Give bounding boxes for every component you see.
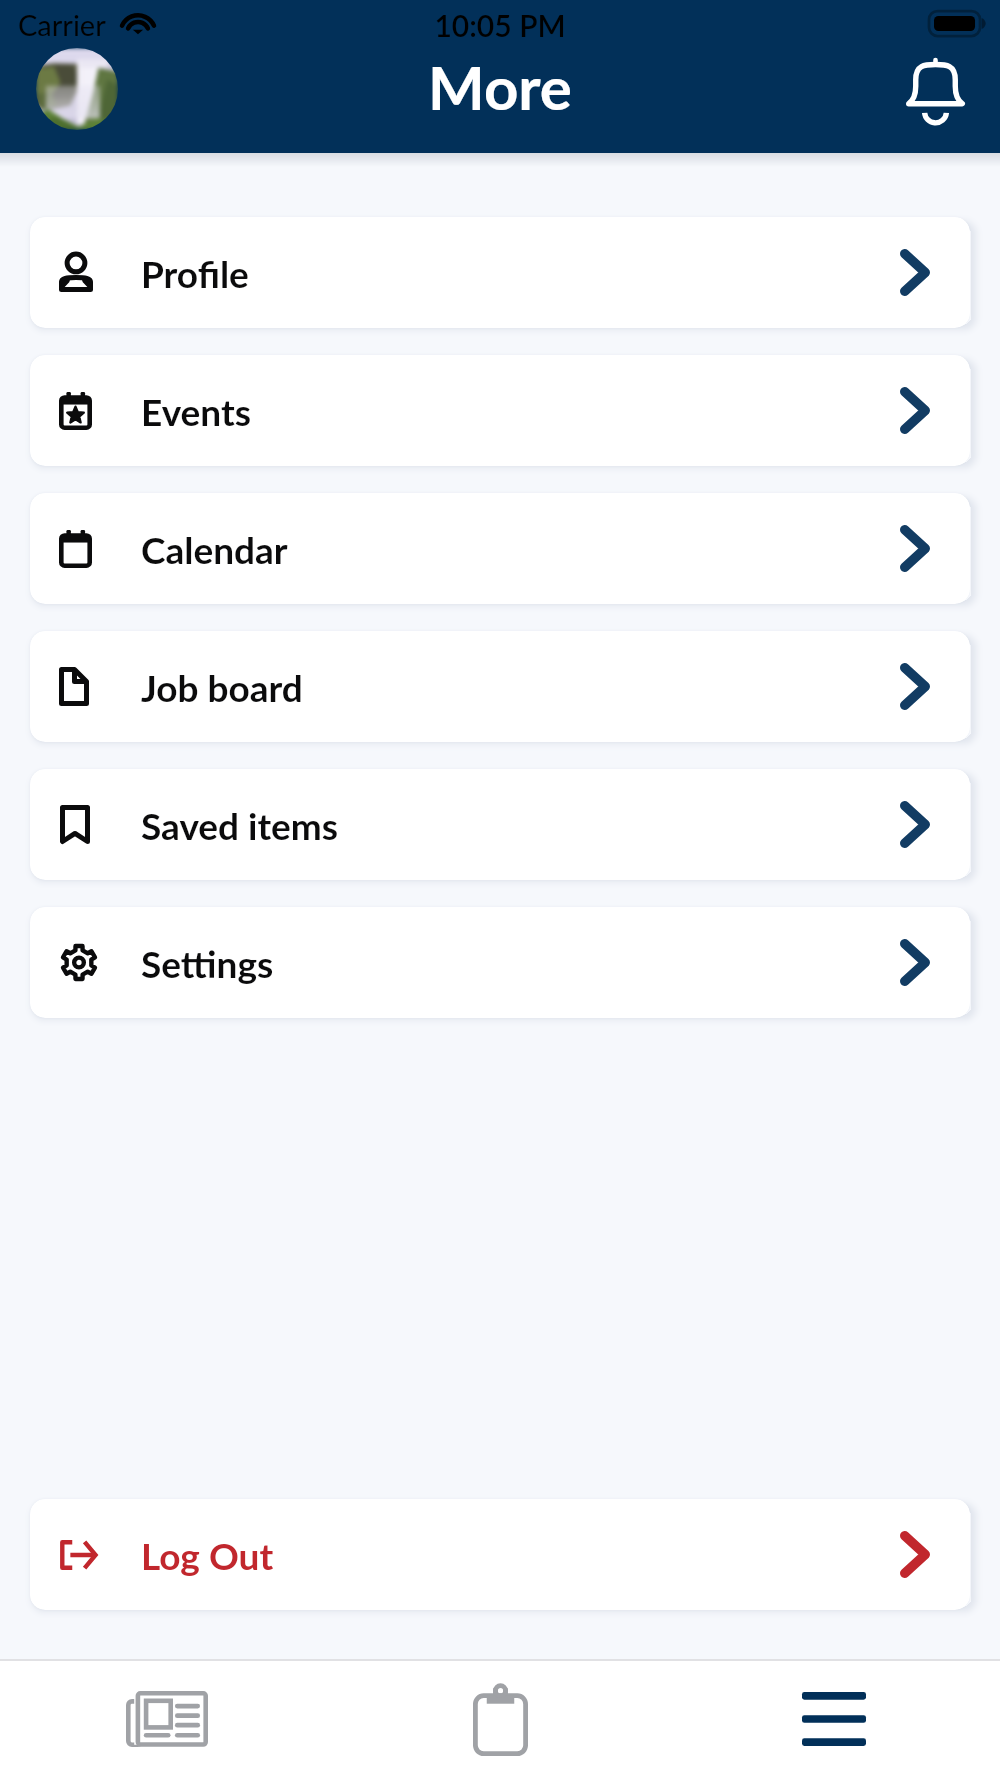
staticText: Saved items (141, 803, 339, 847)
button[interactable]: Jobs (334, 1659, 667, 1778)
staticText: More (0, 51, 1000, 123)
staticText: Job board (141, 665, 303, 709)
button[interactable]: Events (30, 355, 970, 466)
button[interactable]: News (0, 1659, 334, 1778)
staticText: Carrier (18, 7, 106, 42)
staticText: Profile (141, 251, 249, 295)
staticText: 10:05 PM (0, 7, 1000, 43)
button[interactable]: Log Out (30, 1499, 970, 1610)
button[interactable]: Profile (30, 217, 970, 328)
button[interactable]: Job board (30, 631, 970, 742)
staticText: Log Out (141, 1533, 274, 1577)
button[interactable]: Notifications (892, 46, 978, 132)
staticText: Settings (141, 941, 274, 985)
button[interactable]: Calendar (30, 493, 970, 604)
button[interactable]: Settings (30, 907, 970, 1018)
staticText: Calendar (141, 527, 288, 571)
button[interactable]: Saved items (30, 769, 970, 880)
button[interactable]: Profile photo (36, 48, 118, 130)
button[interactable]: More menu (667, 1659, 1000, 1778)
staticText: Events (141, 389, 251, 433)
